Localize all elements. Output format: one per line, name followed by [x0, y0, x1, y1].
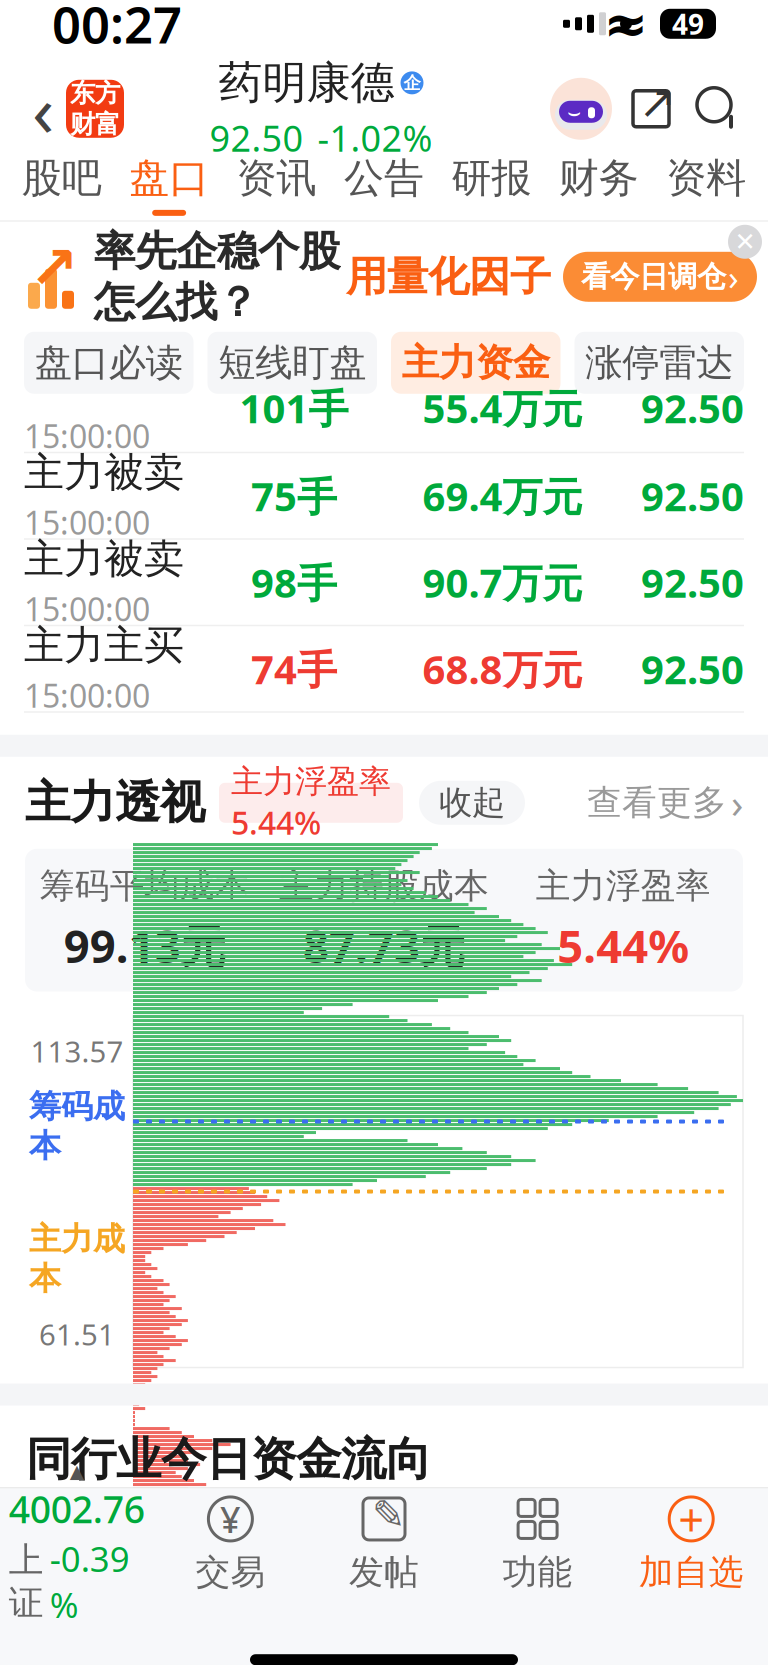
button[interactable]: Share [614, 77, 688, 141]
button[interactable]: 收起 [419, 781, 525, 825]
staticText: 101手 [239, 381, 348, 434]
staticText: 92.50 [641, 556, 744, 609]
button[interactable]: East Money home [66, 80, 124, 138]
staticText: 主力透视 [25, 775, 205, 831]
staticText: 87.73元 [303, 915, 465, 975]
button[interactable]: 公告 [330, 149, 438, 221]
staticText: › [731, 776, 743, 829]
staticText: 看今日调仓 [581, 259, 726, 295]
staticText: 99.13元 [64, 915, 226, 975]
staticText: 盘口必读 [35, 340, 183, 386]
button[interactable]: 主力资金 [391, 332, 560, 394]
staticText: › [728, 254, 739, 300]
staticText: 主力浮盈率 [536, 865, 711, 907]
staticText: 功能 [503, 1551, 573, 1593]
button[interactable]: ▲ [0, 1488, 154, 1600]
staticText: 加自选 [639, 1551, 744, 1593]
button[interactable]: 主力被卖 [0, 540, 768, 625]
staticText: 5.44% [557, 915, 689, 975]
staticText: 15:00:00 [24, 674, 150, 717]
staticText: ¥ [220, 1495, 241, 1543]
staticText: 55.4万元 [422, 381, 582, 434]
staticText: 资料 [666, 154, 746, 203]
staticText: 90.7万元 [422, 556, 582, 609]
staticText: 企 [403, 72, 420, 93]
button[interactable]: 主力被卖 [0, 453, 768, 538]
staticText: 15:00:00 [24, 501, 150, 544]
staticText: 68.8万元 [422, 642, 582, 695]
staticText: 92.50 [641, 381, 744, 434]
staticText: 用量化因子 [346, 251, 551, 302]
staticText: 69.4万元 [422, 469, 582, 522]
staticText: 98手 [251, 556, 337, 609]
staticText: 盘口 [129, 154, 209, 203]
staticText: 92.50 [641, 469, 744, 522]
button[interactable]: + [614, 1488, 768, 1600]
staticText: ↗ [638, 76, 676, 128]
button[interactable]: 资讯 [223, 149, 330, 221]
staticText: 同行业今日资金流向 [26, 1431, 431, 1487]
button[interactable]: AI assistant [548, 76, 614, 142]
staticText: ▲ [70, 1461, 84, 1482]
button[interactable]: 功能 [461, 1488, 614, 1600]
button[interactable]: 主力主买 [0, 626, 768, 711]
staticText: 15:00:00 [24, 414, 150, 457]
staticText: 75手 [251, 469, 337, 522]
staticText: + [678, 1489, 704, 1549]
button[interactable]: Back [20, 77, 66, 141]
button[interactable]: Search [688, 77, 748, 141]
staticText: 113.57 [30, 1031, 123, 1070]
staticText: ✕ [734, 227, 755, 256]
staticText: 率先企稳个股怎么找？ [94, 226, 340, 327]
button[interactable]: 盘口 [115, 149, 223, 221]
staticText: ‹ [32, 61, 54, 157]
staticText: -0.39% [50, 1536, 130, 1628]
staticText: 筹码平均成本 [40, 865, 250, 907]
button[interactable]: 资料 [653, 149, 760, 221]
staticText: 东方 [70, 78, 120, 109]
staticText: 资讯 [237, 154, 317, 203]
button[interactable]: 短线盯盘 [207, 332, 377, 394]
staticText: 4002.76 [9, 1484, 145, 1534]
staticText: 财务 [559, 154, 639, 203]
staticText: 主力浮盈率5.44% [231, 762, 391, 844]
staticText: 交易 [195, 1551, 265, 1593]
staticText: 股吧 [22, 154, 102, 203]
button[interactable]: 查看更多 [587, 778, 743, 828]
staticText: 92.50 [209, 114, 303, 162]
button[interactable]: Close ad [722, 222, 768, 262]
staticText: 公告 [344, 154, 424, 203]
staticText: 涨停雷达 [585, 340, 733, 386]
staticText: 49 [672, 5, 704, 42]
button[interactable]: 研报 [438, 149, 545, 221]
button[interactable]: ↗ [0, 222, 768, 332]
staticText: 财富 [70, 109, 120, 140]
staticText: 主力主买 [24, 621, 184, 670]
staticText: ⌣ [567, 102, 581, 123]
button[interactable]: 涨停雷达 [574, 332, 744, 394]
staticText: 查看更多 [587, 781, 727, 824]
staticText: 药明康德 [218, 56, 394, 110]
staticText: 发帖 [349, 1551, 419, 1593]
staticText: 上证 [9, 1539, 44, 1624]
staticText: 61.51 [39, 1315, 115, 1354]
staticText: 92.50 [641, 642, 744, 695]
staticText: 短线盯盘 [218, 340, 366, 386]
button[interactable]: ¥ [154, 1488, 307, 1600]
button[interactable]: 财务 [545, 149, 652, 221]
staticText: 主力成本 [29, 1219, 125, 1298]
button[interactable]: 股吧 [8, 149, 115, 221]
staticText: ↗ [29, 234, 78, 301]
button[interactable]: 盘口必读 [24, 332, 193, 394]
staticText: 00:27 [52, 0, 182, 57]
button[interactable]: ✎ [307, 1488, 461, 1600]
staticText: 研报 [451, 154, 531, 203]
staticText: 74手 [251, 642, 337, 695]
staticText: 主力资金 [402, 340, 550, 386]
staticText: ≈ [603, 0, 648, 54]
staticText: 15:00:00 [24, 588, 150, 630]
staticText: ✎ [372, 1492, 406, 1538]
staticText: 筹码成本 [29, 1087, 125, 1165]
staticText: 主力被卖 [24, 534, 184, 584]
staticText: 主力被卖 [24, 448, 184, 497]
